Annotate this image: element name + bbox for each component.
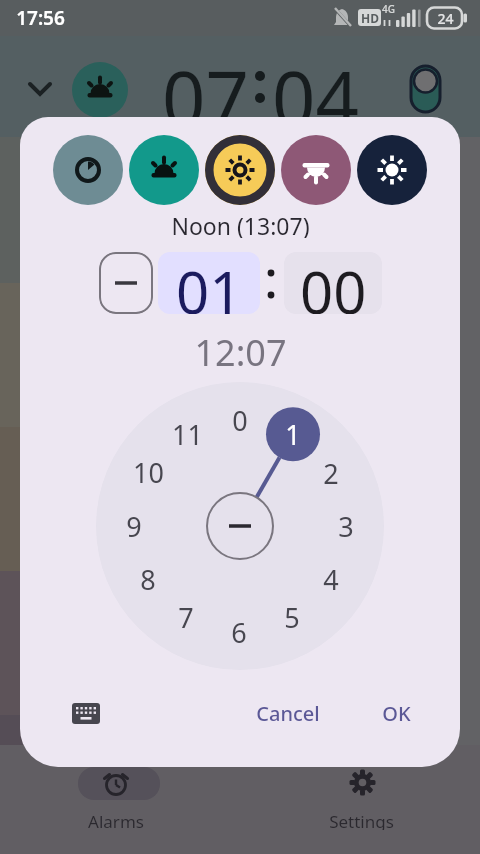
staticText: 11 <box>172 416 203 452</box>
button[interactable]: 10 <box>128 454 168 490</box>
button[interactable] <box>357 135 427 205</box>
staticText: 8 <box>140 561 156 597</box>
staticText: 0 <box>232 402 248 438</box>
button[interactable] <box>129 135 199 205</box>
staticText: 3 <box>338 508 354 544</box>
button[interactable]: OK <box>368 695 424 731</box>
staticText: 5 <box>284 599 300 635</box>
staticText: Alarms <box>88 810 144 830</box>
staticText: 04 <box>272 46 359 130</box>
button[interactable]: 6 <box>219 614 259 650</box>
staticText: Noon (13:07) <box>171 210 310 238</box>
button[interactable] <box>205 135 275 205</box>
button[interactable] <box>62 689 110 737</box>
button[interactable] <box>66 757 166 847</box>
button[interactable] <box>99 252 153 314</box>
button[interactable]: 11 <box>167 416 207 452</box>
button[interactable]: 00 <box>284 252 382 314</box>
staticText: 17:56 <box>16 5 65 31</box>
staticText: 4G <box>382 2 395 16</box>
staticText: Cancel <box>256 700 320 727</box>
staticText: 9 <box>126 508 142 544</box>
staticText: 1 <box>285 416 301 452</box>
button[interactable]: 4 <box>311 561 351 597</box>
button[interactable]: 3 <box>326 508 366 544</box>
button[interactable]: 5 <box>272 599 312 635</box>
button[interactable]: 9 <box>114 508 154 544</box>
staticText: 6 <box>231 614 247 650</box>
button[interactable]: Cancel <box>248 695 328 731</box>
button[interactable] <box>281 135 351 205</box>
staticText: 07 <box>162 46 249 130</box>
staticText: OK <box>382 700 411 727</box>
staticText: 4 <box>323 561 339 597</box>
button[interactable] <box>53 135 123 205</box>
button[interactable]: 1 <box>273 416 313 452</box>
button[interactable] <box>72 62 128 118</box>
staticText: 2 <box>323 455 339 491</box>
staticText: 7 <box>178 599 194 635</box>
staticText: 00 <box>300 252 367 314</box>
button[interactable]: 0 <box>220 402 260 438</box>
button[interactable]: 01 <box>158 252 260 314</box>
staticText: HD <box>361 10 379 26</box>
button[interactable]: 2 <box>311 455 351 491</box>
staticText: Settings <box>329 810 394 830</box>
staticText: 01 <box>176 252 243 314</box>
button[interactable] <box>311 757 411 847</box>
button[interactable] <box>408 63 442 115</box>
button[interactable]: 7 <box>166 599 206 635</box>
button[interactable]: 8 <box>128 561 168 597</box>
staticText: 24 <box>437 9 454 28</box>
staticText: 12:07 <box>194 328 287 368</box>
staticText: 10 <box>133 454 164 490</box>
